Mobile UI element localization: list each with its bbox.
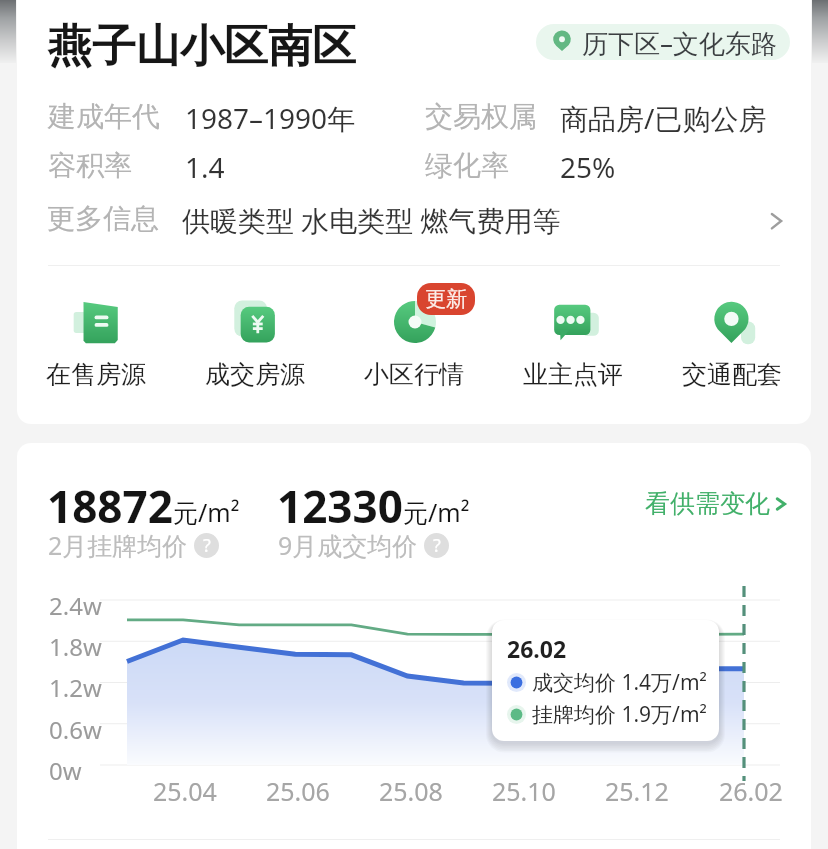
button[interactable]: 交通配套 — [652, 288, 811, 390]
staticText: 25.12 — [605, 774, 669, 808]
staticText: 成交均价 1.4万/m² — [532, 668, 707, 697]
staticText: 25.10 — [492, 774, 556, 808]
staticText: 1.4 — [185, 148, 225, 186]
staticText: 更多信息 — [47, 201, 159, 236]
staticText: 绿化率 — [425, 148, 509, 183]
staticText: 2.4w — [49, 589, 102, 622]
button[interactable]: 看供需变化 — [637, 484, 802, 523]
staticText: 1987–1990年 — [185, 99, 356, 137]
button[interactable]: 历下区–文化东路 — [536, 24, 790, 60]
staticText: 供暖类型 水电类型 燃气费用等 — [182, 201, 561, 239]
staticText: 25.04 — [153, 774, 217, 808]
staticText: 商品房/已购公房 — [560, 99, 767, 137]
staticText: 0w — [49, 754, 82, 787]
staticText: 更新 — [425, 286, 467, 312]
button[interactable]: 更多信息 — [17, 197, 811, 243]
staticText: 2月挂牌均价 — [48, 528, 188, 562]
staticText: 26.02 — [507, 633, 567, 664]
staticText: 1.2w — [49, 671, 102, 704]
staticText: 成交房源 — [205, 359, 305, 390]
staticText: 元/m² — [173, 495, 240, 529]
staticText: 容积率 — [48, 148, 132, 183]
staticText: 交通配套 — [682, 359, 782, 390]
staticText: 元/m² — [403, 495, 470, 529]
staticText: 25% — [560, 148, 616, 186]
button[interactable]: 业主点评 — [493, 288, 652, 390]
staticText: 26.02 — [719, 774, 783, 808]
staticText: ? — [203, 533, 211, 558]
staticText: ? — [433, 533, 441, 558]
staticText: 在售房源 — [46, 359, 146, 390]
staticText: 燕子山小区南区 — [48, 19, 356, 74]
staticText: 0.6w — [49, 713, 102, 746]
staticText: 1.8w — [49, 630, 102, 663]
button[interactable]: 成交房源 — [175, 288, 334, 390]
staticText: 交易权属 — [425, 99, 537, 134]
staticText: 建成年代 — [48, 99, 160, 134]
staticText: 25.08 — [379, 774, 443, 808]
staticText: 9月成交均价 — [278, 528, 418, 562]
staticText: 小区行情 — [364, 359, 464, 390]
button[interactable]: 更新 — [334, 288, 493, 390]
staticText: 12330 — [277, 476, 403, 536]
staticText: 看供需变化 — [645, 488, 770, 519]
staticText: 业主点评 — [523, 359, 623, 390]
staticText: 18872 — [47, 476, 173, 536]
staticText: 25.06 — [266, 774, 330, 808]
button[interactable]: 在售房源 — [17, 288, 175, 390]
staticText: 挂牌均价 1.9万/m² — [532, 700, 707, 729]
staticText: 历下区–文化东路 — [582, 25, 778, 60]
